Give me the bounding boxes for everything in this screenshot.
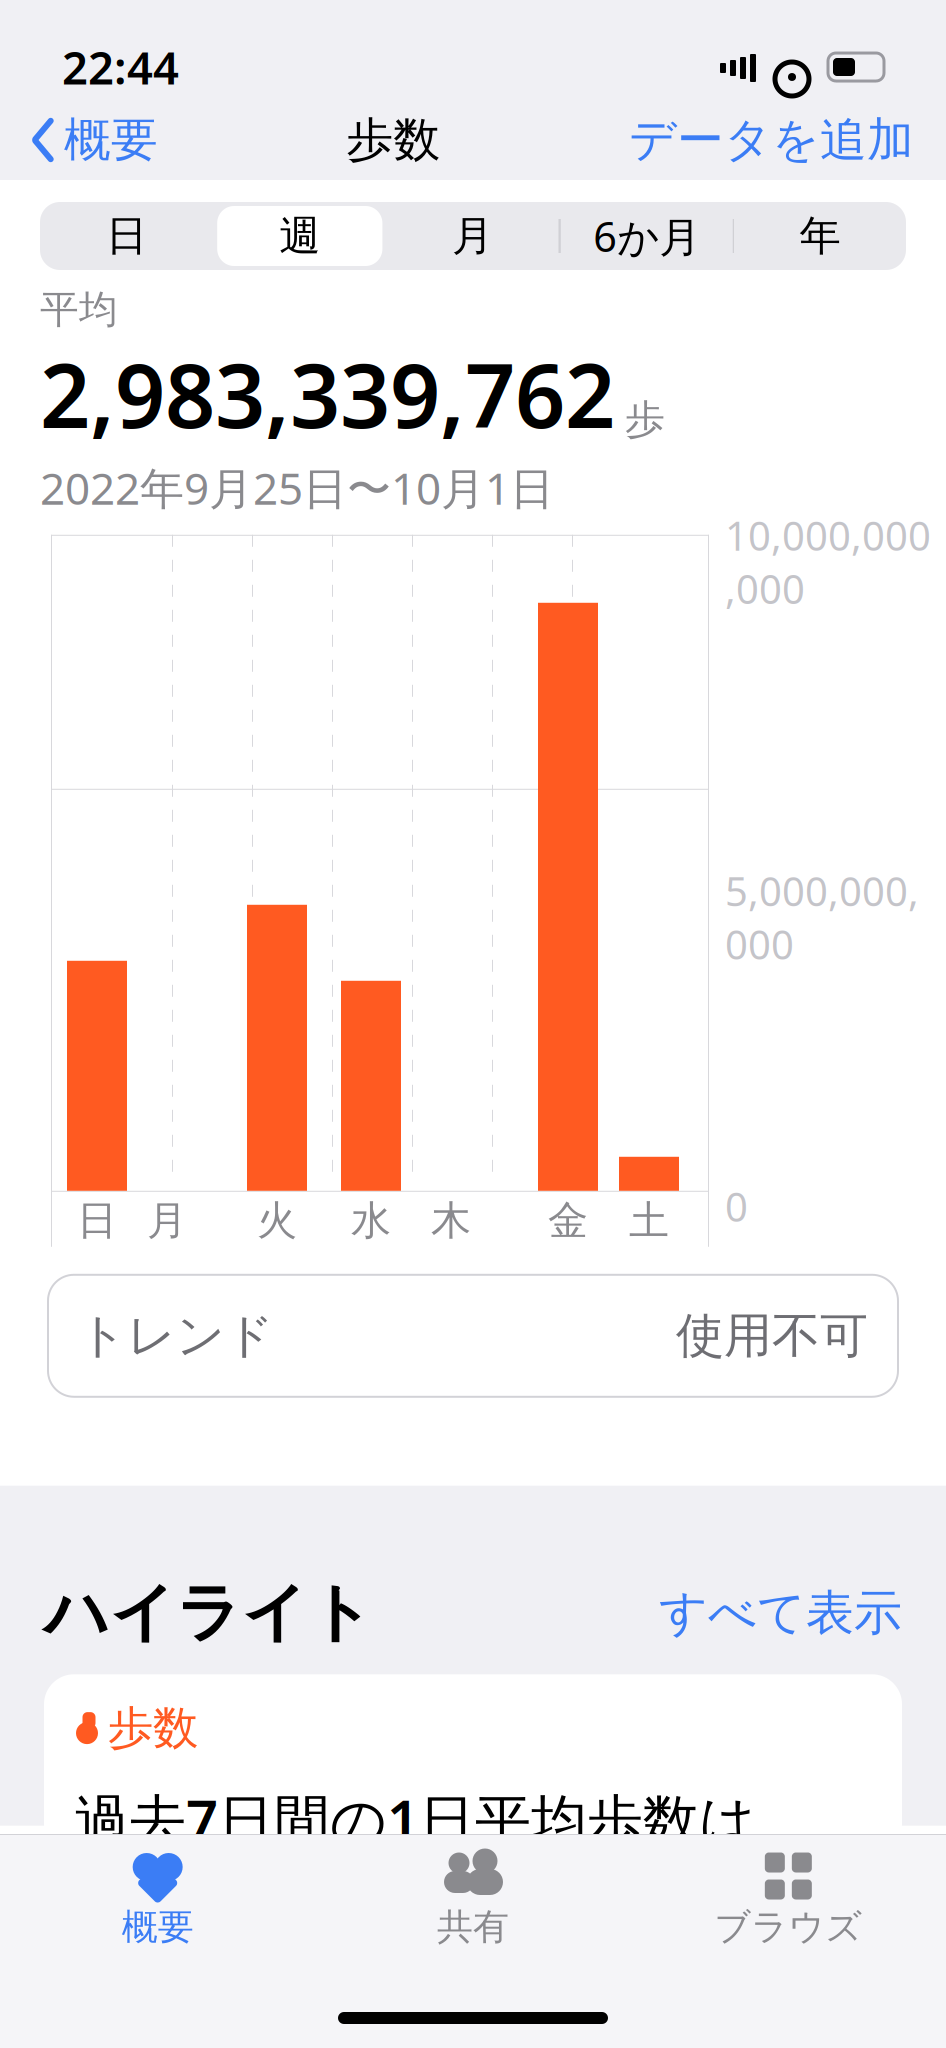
staticText: 歩 bbox=[625, 395, 665, 444]
staticText: 歩数 bbox=[346, 111, 440, 169]
button[interactable]: 日 bbox=[40, 202, 213, 270]
staticText: 歩数 bbox=[108, 1700, 198, 1756]
staticText: 共有 bbox=[437, 1905, 509, 1949]
staticText: すべて表示 bbox=[659, 1583, 902, 1642]
button[interactable]: 年 bbox=[733, 202, 906, 270]
button[interactable]: 共有 bbox=[315, 1835, 631, 1949]
button[interactable]: 週 bbox=[213, 202, 386, 270]
staticText: 金 bbox=[548, 1196, 588, 1245]
staticText: 年 bbox=[799, 211, 840, 261]
staticText: 火 bbox=[257, 1196, 297, 1245]
staticText: トレンド bbox=[78, 1306, 274, 1365]
button[interactable]: データを追加 bbox=[623, 101, 920, 179]
staticText: 概要 bbox=[122, 1905, 194, 1949]
staticText: 水 bbox=[351, 1196, 391, 1245]
staticText: 月 bbox=[452, 211, 493, 261]
staticText: 使用不可 bbox=[676, 1306, 868, 1365]
staticText: 概要 bbox=[64, 111, 158, 169]
button[interactable]: 歩数 bbox=[44, 1674, 902, 1854]
staticText: 日 bbox=[77, 1196, 117, 1245]
staticText: 過去7日間の1日平均歩数は bbox=[74, 1782, 756, 1856]
staticText: 平均 bbox=[40, 286, 118, 333]
staticText: 6か月 bbox=[593, 209, 700, 263]
staticText: ブラウズ bbox=[714, 1905, 862, 1949]
staticText: 0 bbox=[725, 1180, 748, 1233]
staticText: 土 bbox=[629, 1196, 669, 1245]
staticText: 週 bbox=[279, 211, 320, 261]
button[interactable]: すべて表示 bbox=[659, 1583, 902, 1642]
staticText: 5,000,000,000 bbox=[725, 864, 919, 970]
staticText: 月 bbox=[147, 1196, 187, 1245]
staticText: 2022年9月25日〜10月1日 bbox=[40, 458, 554, 517]
button[interactable]: 概要 bbox=[26, 101, 164, 179]
staticText: ハイライト bbox=[44, 1574, 374, 1652]
staticText: 2,983,339,762 bbox=[40, 335, 615, 452]
staticText: データを追加 bbox=[629, 111, 914, 169]
staticText: 日 bbox=[106, 211, 147, 261]
staticText: 22:44 bbox=[62, 37, 179, 97]
button[interactable]: トレンド bbox=[48, 1275, 898, 1397]
button[interactable]: ブラウズ bbox=[631, 1835, 946, 1949]
button[interactable]: 6か月 bbox=[560, 202, 733, 270]
button[interactable]: 概要 bbox=[0, 1835, 315, 1949]
staticText: 10,000,000,000 bbox=[725, 509, 931, 615]
button[interactable]: 月 bbox=[386, 202, 560, 270]
staticText: 木 bbox=[431, 1196, 471, 1245]
